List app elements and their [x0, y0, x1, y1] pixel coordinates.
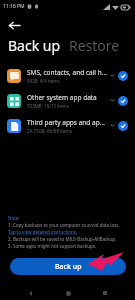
- staticText: SMS, contacts, and call hist...: [27, 68, 108, 77]
- button[interactable]: Recents: [98, 286, 112, 300]
- button[interactable]: SMS, contacts, and call hist...: [0, 63, 135, 88]
- staticText: Tap to view detailed instructions.: [8, 229, 78, 235]
- staticText: 29.75GB 66/68 items: [27, 128, 72, 134]
- staticText: 582B 4/4 items: [27, 78, 60, 84]
- staticText: Third party apps and app data: [27, 118, 108, 127]
- staticText: 703MB 15/15 items: [27, 103, 69, 109]
- button[interactable]: Home: [61, 286, 75, 300]
- button[interactable]: Selected: [118, 121, 128, 131]
- staticText: 1. Copy backups to your computer to avoi…: [8, 222, 120, 228]
- button[interactable]: Back up: [10, 258, 126, 275]
- button[interactable]: Other system app data: [0, 88, 135, 113]
- button[interactable]: Restore: [69, 36, 120, 55]
- button[interactable]: Back: [23, 286, 37, 300]
- staticText: 2. Backups will be saved to MIUI-Backup-…: [8, 236, 117, 242]
- staticText: 3. Some apps might not support backups.: [8, 243, 97, 249]
- button[interactable]: Third party apps and app data: [0, 113, 135, 138]
- staticText: Other system app data: [27, 93, 97, 102]
- staticText: Back up: [8, 36, 61, 55]
- button[interactable]: Selected: [118, 71, 128, 81]
- staticText: Note:: [8, 215, 20, 221]
- button[interactable]: Selected: [118, 96, 128, 106]
- staticText: 11:16 PM: [3, 3, 25, 10]
- staticText: Back up: [55, 262, 82, 272]
- button[interactable]: Tap to view detailed instructions.: [8, 229, 78, 235]
- button[interactable]: Back up: [8, 36, 63, 55]
- staticText: Restore: [69, 36, 120, 55]
- button[interactable]: Back: [6, 17, 22, 33]
